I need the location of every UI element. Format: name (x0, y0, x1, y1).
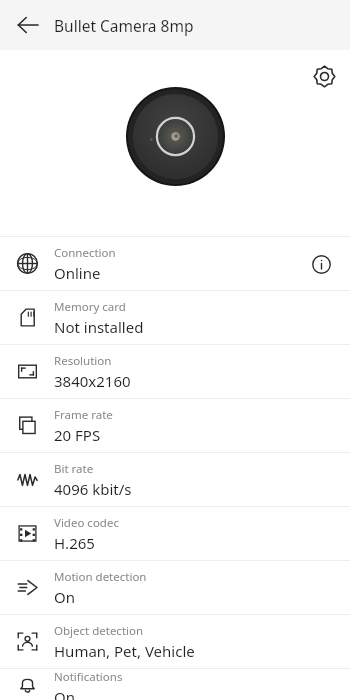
button[interactable]: Video codec (0, 507, 350, 560)
staticText: Not installed (54, 317, 144, 337)
staticText: Notifications (54, 669, 123, 685)
staticText: Bullet Camera 8mp (54, 15, 194, 36)
staticText: Bit rate (54, 461, 94, 477)
staticText: Video codec (54, 515, 119, 531)
button[interactable]: Resolution (0, 345, 350, 398)
staticText: H.265 (54, 533, 95, 553)
button[interactable]: Connection (0, 237, 350, 290)
staticText: Memory card (54, 299, 126, 315)
staticText: Object detection (54, 623, 144, 639)
staticText: Human, Pet, Vehicle (54, 641, 195, 661)
staticText: On (54, 587, 75, 607)
staticText: 4096 kbit/s (54, 479, 132, 499)
button[interactable]: More information (302, 245, 340, 283)
button[interactable]: Frame rate (0, 399, 350, 452)
staticText: Online (54, 263, 101, 283)
staticText: On (54, 687, 75, 700)
button[interactable]: Object detection (0, 615, 350, 668)
button[interactable]: Motion detection (0, 561, 350, 614)
staticText: Resolution (54, 353, 112, 369)
staticText: 20 FPS (54, 425, 101, 445)
button[interactable]: Back (8, 5, 48, 45)
button[interactable]: Settings (304, 56, 344, 96)
staticText: Connection (54, 245, 116, 261)
button[interactable]: Memory card (0, 291, 350, 344)
staticText: 3840x2160 (54, 371, 131, 391)
button[interactable]: Notifications (0, 669, 350, 700)
button[interactable]: Bit rate (0, 453, 350, 506)
staticText: Frame rate (54, 407, 113, 423)
staticText: Motion detection (54, 569, 147, 585)
